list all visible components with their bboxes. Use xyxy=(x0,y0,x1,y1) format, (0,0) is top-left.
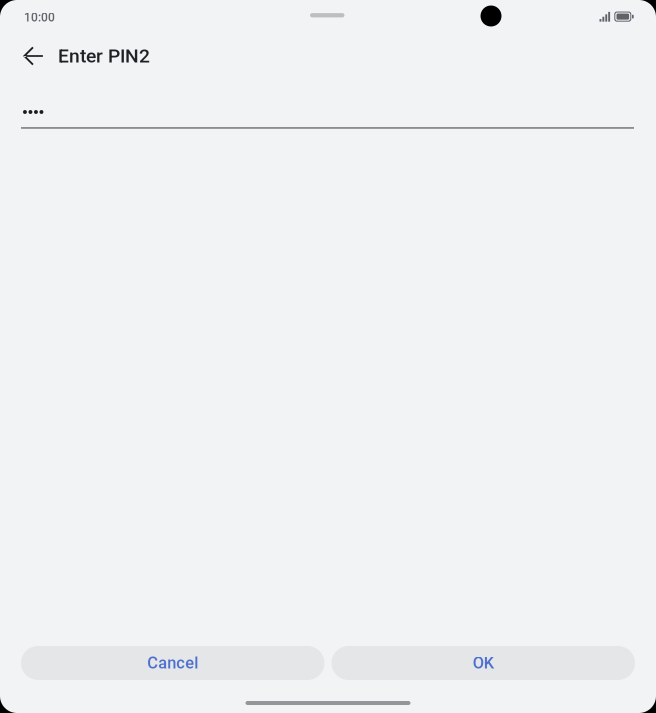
button[interactable]: OK xyxy=(331,646,635,680)
button[interactable]: Back xyxy=(0,32,52,78)
staticText: Cancel xyxy=(147,653,198,673)
staticText: Enter PIN2 xyxy=(58,45,150,67)
button[interactable]: PIN2 entry field xyxy=(0,78,656,129)
button[interactable]: Cancel xyxy=(21,646,324,680)
staticText: OK xyxy=(473,653,494,673)
staticText: 10:00 xyxy=(24,10,55,25)
